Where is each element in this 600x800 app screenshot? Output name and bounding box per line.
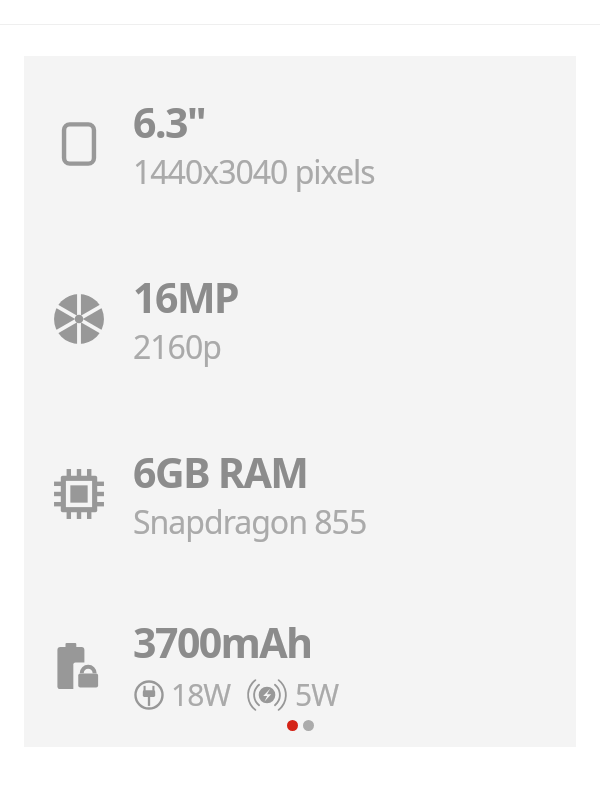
staticText: Snapdragon 855 [133, 500, 367, 544]
button[interactable]: Processor [24, 406, 576, 581]
staticText: 18W [171, 674, 231, 715]
other: Display size [24, 56, 133, 231]
button[interactable]: Battery [24, 581, 576, 747]
other: Processor [24, 406, 133, 581]
staticText: 6.3" [133, 94, 206, 150]
button[interactable]: Camera [24, 231, 576, 406]
staticText: 5W [295, 674, 339, 715]
button[interactable]: Page 2 [303, 720, 314, 731]
button[interactable]: Page 1 [287, 720, 298, 731]
other: Battery [24, 581, 133, 747]
button[interactable]: Display size [24, 56, 576, 231]
staticText: 6GB RAM [133, 444, 308, 500]
staticText: 2160p [133, 325, 221, 369]
staticText: 16MP [133, 269, 239, 325]
staticText: 1440x3040 pixels [133, 150, 375, 194]
button[interactable]: Display size [24, 56, 576, 747]
staticText: 3700mAh [133, 614, 312, 670]
other: Camera [24, 231, 133, 406]
